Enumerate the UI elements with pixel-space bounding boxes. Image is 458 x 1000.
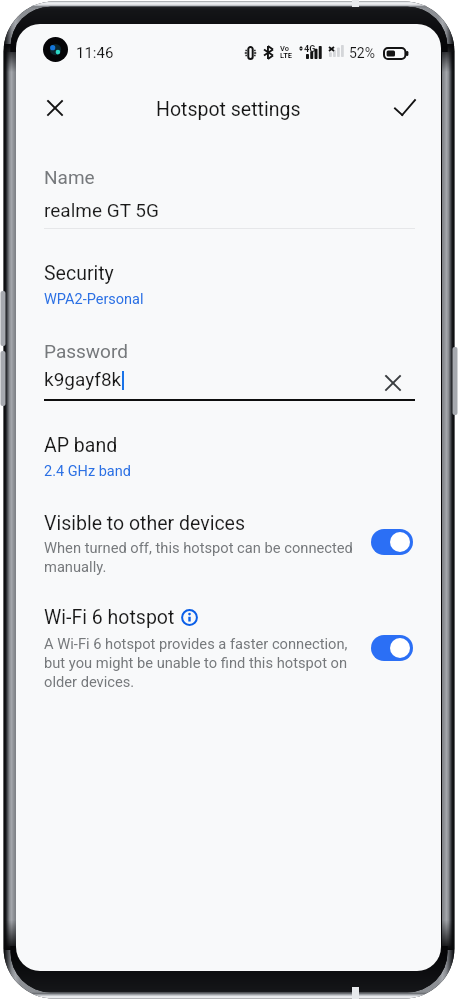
staticText: 52% — [349, 45, 375, 61]
button[interactable]: Close — [33, 86, 77, 130]
button[interactable]: AP band — [44, 434, 415, 480]
staticText: 2.4 GHz band — [44, 463, 131, 480]
button[interactable]: Visible to other devices — [44, 512, 362, 599]
staticText: Security — [44, 262, 114, 285]
button[interactable]: Name — [44, 166, 415, 229]
button[interactable]: Done — [383, 85, 427, 129]
staticText: 11:46 — [76, 44, 114, 62]
staticText: When turned off, this hotspot can be con… — [44, 539, 362, 576]
staticText: AP band — [44, 434, 118, 457]
staticText: 4G — [304, 44, 316, 55]
button[interactable]: Toggle — [371, 529, 413, 555]
button[interactable]: Wi-Fi 6 hotspot — [44, 606, 356, 695]
button[interactable]: Password — [44, 340, 415, 428]
staticText: WPA2-Personal — [44, 291, 144, 308]
button[interactable]: Clear password — [379, 369, 407, 397]
button[interactable]: Security — [44, 262, 415, 308]
staticText: Wi-Fi 6 hotspot — [44, 606, 175, 629]
staticText: Hotspot settings — [156, 98, 301, 121]
staticText: LTE — [280, 51, 293, 60]
staticText: k9gayf8k — [44, 368, 122, 390]
staticText: Name — [44, 166, 95, 188]
staticText: A Wi-Fi 6 hotspot provides a faster conn… — [44, 635, 356, 691]
staticText: Visible to other devices — [44, 512, 246, 535]
staticText: Password — [44, 340, 128, 362]
staticText: realme GT 5G — [44, 199, 159, 221]
button[interactable]: Toggle — [371, 635, 413, 661]
staticText: Vo — [280, 44, 289, 53]
